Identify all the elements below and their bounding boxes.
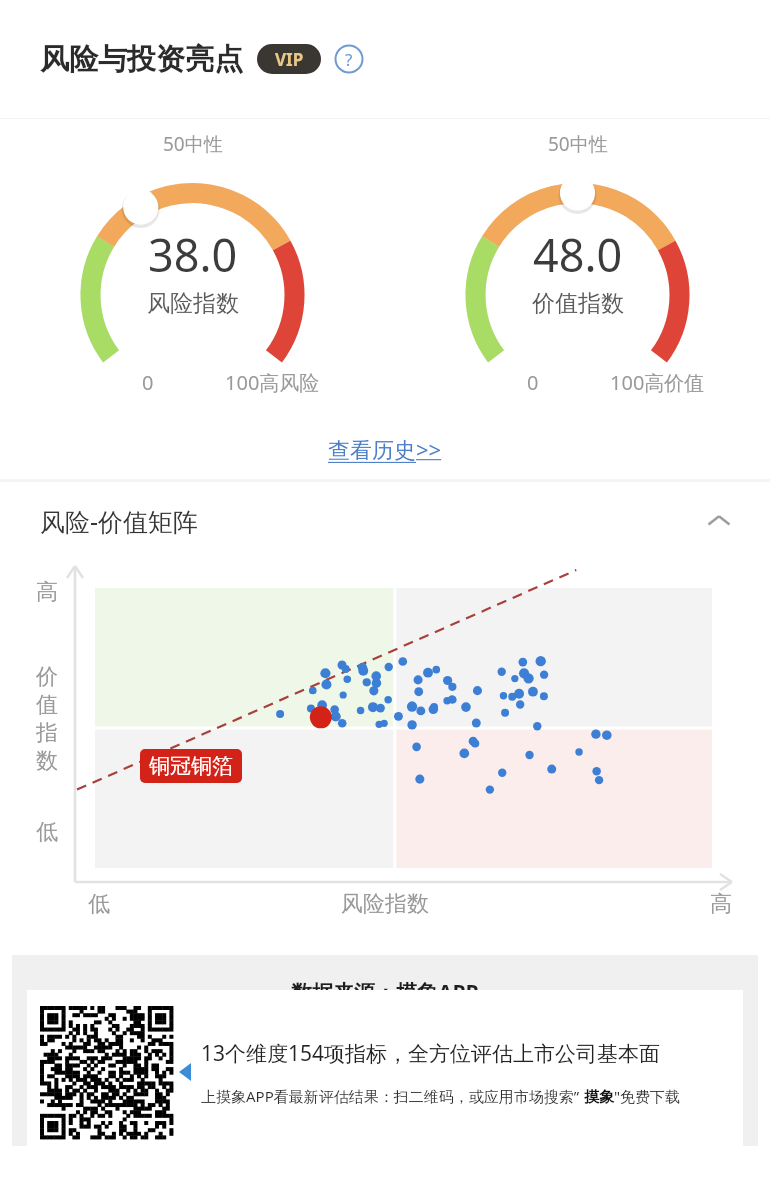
staticText: 高 — [710, 890, 732, 918]
button[interactable]: VIP — [257, 44, 321, 74]
staticText: 风险与投资亮点 — [40, 41, 243, 78]
staticText: 风险指数 — [341, 890, 429, 918]
staticText: VIP — [275, 48, 304, 71]
staticText: 100高价值 — [610, 369, 705, 396]
staticText: 摸象 — [580, 1086, 614, 1106]
staticText: 数 — [36, 747, 58, 775]
staticText: 48.0 — [533, 224, 623, 285]
staticText: 风险指数 — [147, 289, 239, 318]
staticText: "免费下载 — [614, 1086, 681, 1106]
staticText: 低 — [88, 890, 110, 918]
staticText: 上摸象APP看最新评估结果：扫二维码，或应用市场搜索” — [201, 1086, 580, 1106]
staticText: 指 — [36, 719, 58, 747]
staticText: 0 — [142, 369, 154, 396]
staticText: 50中性 — [163, 131, 223, 157]
staticText: 查看历史>> — [328, 434, 442, 464]
staticText: 数据来源：摸象APP — [291, 978, 479, 1007]
button[interactable]: 风险-价值矩阵 — [0, 482, 770, 560]
staticText: 38.0 — [148, 224, 238, 285]
staticText: 价值指数 — [532, 289, 624, 318]
staticText: 0 — [527, 369, 539, 396]
button[interactable]: 查看历史>> — [316, 428, 454, 470]
staticText: 13个维度154项指标，全方位评估上市公司基本面 — [201, 1039, 661, 1068]
staticText: 值 — [36, 691, 58, 719]
staticText: 风险-价值矩阵 — [40, 504, 199, 538]
staticText: 价 — [36, 663, 58, 691]
staticText: 高 — [36, 578, 58, 606]
button[interactable]: Help — [334, 44, 364, 74]
button[interactable]: 铜冠铜箔 — [140, 749, 242, 783]
staticText: 低 — [36, 818, 58, 846]
staticText: 50中性 — [548, 131, 608, 157]
other: Collapse — [704, 506, 734, 536]
staticText: ? — [345, 48, 353, 71]
staticText: 铜冠铜箔 — [149, 753, 233, 779]
staticText: 100高风险 — [225, 369, 320, 396]
